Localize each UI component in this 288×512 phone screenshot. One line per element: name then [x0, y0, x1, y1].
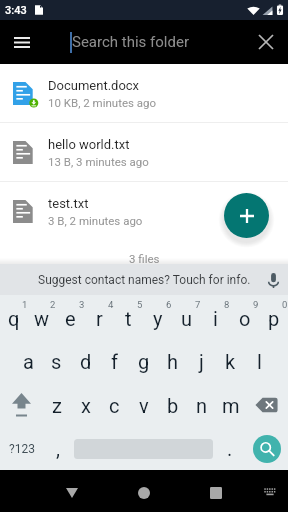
staticText: b — [167, 394, 179, 417]
button[interactable]: g — [129, 339, 158, 383]
staticText: test.txt — [48, 196, 89, 211]
staticText: o — [239, 307, 251, 330]
staticText: 6 — [166, 299, 172, 310]
staticText: 3 files — [129, 252, 160, 265]
button[interactable]: s — [42, 339, 71, 383]
button[interactable]: Menu — [0, 20, 44, 64]
staticText: z — [52, 394, 62, 417]
staticText: c — [109, 394, 120, 417]
button[interactable]: m — [216, 383, 245, 427]
button[interactable]: hello world.txt — [0, 123, 288, 181]
staticText: v — [139, 394, 149, 417]
staticText: t — [125, 307, 132, 330]
staticText: ?123 — [9, 442, 35, 456]
staticText: hello world.txt — [48, 137, 130, 152]
button[interactable]: v — [129, 383, 158, 427]
button[interactable]: test.txt — [0, 182, 288, 240]
button[interactable]: q — [0, 295, 28, 339]
button[interactable]: t — [114, 295, 143, 339]
button[interactable]: c — [100, 383, 129, 427]
button[interactable]: Voice input — [262, 269, 284, 291]
staticText: l — [257, 350, 262, 373]
button[interactable]: Document.docx — [0, 64, 288, 122]
staticText: Document.docx — [48, 78, 140, 93]
button[interactable]: j — [187, 339, 216, 383]
button[interactable]: a — [14, 339, 42, 383]
staticText: d — [80, 350, 92, 373]
staticText: 3:43 — [5, 4, 27, 17]
staticText: 7 — [195, 299, 201, 310]
button[interactable]: f — [100, 339, 129, 383]
button[interactable]: o — [230, 295, 259, 339]
staticText: , — [56, 437, 60, 460]
staticText: Suggest contact names? Touch for info. — [38, 273, 251, 287]
button[interactable]: Search — [253, 435, 281, 463]
staticText: j — [199, 350, 204, 373]
button[interactable]: e — [56, 295, 85, 339]
staticText: 8 — [224, 299, 230, 310]
staticText: p — [268, 307, 280, 330]
staticText: a — [23, 350, 34, 373]
staticText: m — [222, 394, 240, 417]
button[interactable]: Add — [224, 193, 269, 238]
staticText: 2 — [50, 299, 56, 310]
staticText: 3 — [79, 299, 85, 310]
staticText: h — [167, 350, 179, 373]
button[interactable]: u — [172, 295, 201, 339]
button[interactable]: n — [187, 383, 216, 427]
staticText: 9 — [253, 299, 259, 310]
staticText: 10 KB, 2 minutes ago — [48, 96, 157, 109]
staticText: x — [81, 394, 91, 417]
staticText: u — [181, 307, 193, 330]
staticText: k — [225, 350, 236, 373]
staticText: 0 — [282, 299, 288, 310]
staticText: i — [213, 307, 218, 330]
button[interactable]: ?123 — [0, 427, 44, 471]
staticText: s — [51, 350, 62, 373]
button[interactable]: x — [71, 383, 100, 427]
button[interactable]: Shift — [0, 383, 43, 427]
staticText: g — [138, 350, 150, 373]
button[interactable]: i — [201, 295, 230, 339]
button[interactable]: b — [158, 383, 187, 427]
button[interactable]: h — [158, 339, 187, 383]
button[interactable]: Back — [52, 473, 92, 512]
staticText: f — [111, 350, 118, 373]
button[interactable]: k — [216, 339, 245, 383]
staticText: n — [196, 394, 208, 417]
button[interactable]: . — [216, 427, 244, 471]
button[interactable]: Clear search — [244, 20, 288, 64]
staticText: 5 — [137, 299, 143, 310]
button[interactable]: d — [71, 339, 100, 383]
staticText: Search this folder — [72, 33, 189, 51]
staticText: 13 B, 3 minutes ago — [48, 155, 149, 168]
staticText: y — [153, 307, 163, 330]
staticText: e — [65, 307, 76, 330]
button[interactable]: p — [259, 295, 288, 339]
staticText: . — [227, 437, 233, 460]
button[interactable]: y — [143, 295, 172, 339]
button[interactable]: , — [44, 427, 72, 471]
staticText: 4 — [108, 299, 114, 310]
button[interactable]: Backspace — [245, 383, 288, 427]
staticText: 1 — [22, 299, 28, 310]
button[interactable]: l — [245, 339, 274, 383]
staticText: r — [96, 307, 103, 330]
staticText: q — [8, 307, 20, 330]
button[interactable]: Home — [124, 473, 164, 512]
button[interactable]: z — [43, 383, 71, 427]
staticText: 3 B, 2 minutes ago — [48, 214, 143, 227]
button[interactable]: r — [85, 295, 114, 339]
button[interactable]: Switch keyboard — [250, 472, 288, 512]
staticText: w — [34, 307, 50, 330]
button[interactable]: Recent apps — [196, 473, 236, 512]
button[interactable]: w — [28, 295, 56, 339]
